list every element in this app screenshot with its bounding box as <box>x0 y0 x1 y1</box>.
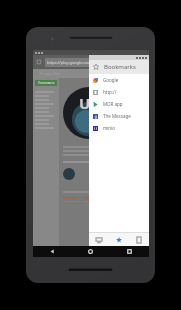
staticText: http://thethemeact99.com/ <box>103 89 149 95</box>
staticText: Bookmarks <box>104 63 136 71</box>
button[interactable]: Google <box>89 74 149 86</box>
button[interactable]: Back <box>33 246 71 257</box>
staticText: UP <box>79 93 100 113</box>
button[interactable]: Bookmarks <box>109 233 129 246</box>
button[interactable]: minio <box>89 122 149 134</box>
staticText: https://play.google.com <box>47 60 92 65</box>
staticText: Установить <box>38 81 55 85</box>
button[interactable]: http://thethemeact99.com/ <box>89 86 149 98</box>
staticText: The Message <box>103 113 131 119</box>
button[interactable]: Recents <box>110 246 149 257</box>
button[interactable]: Home <box>71 246 110 257</box>
button[interactable]: Recent tabs <box>89 233 109 246</box>
button[interactable]: The Message <box>89 110 149 122</box>
other: Bookmarks star <box>93 64 99 70</box>
button[interactable]: MOR app <box>89 98 149 110</box>
staticText: Google Play <box>40 71 60 76</box>
staticText: Google <box>103 77 119 83</box>
staticText: MOR app <box>103 101 123 107</box>
staticText: minio <box>103 125 116 131</box>
button[interactable]: Bookmarks star <box>89 60 149 74</box>
button[interactable]: Downloads <box>129 233 149 246</box>
